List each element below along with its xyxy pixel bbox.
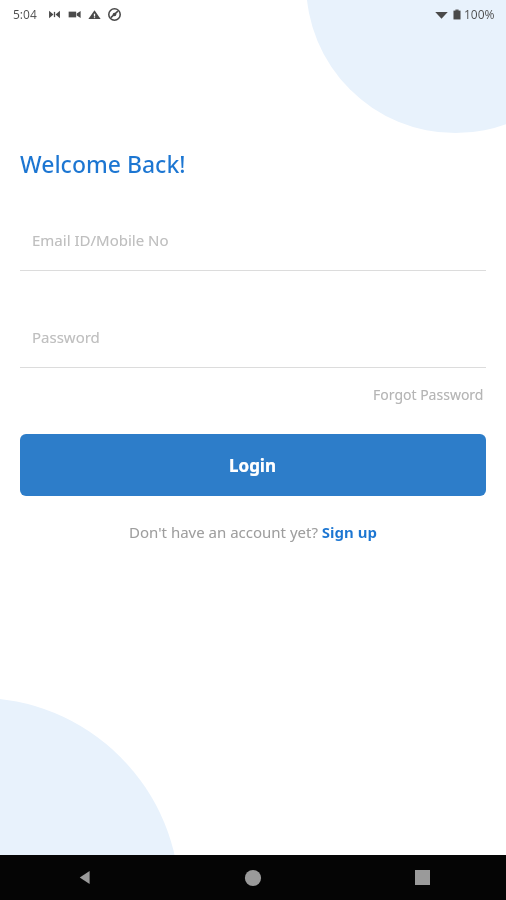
button[interactable]: Back xyxy=(60,855,108,900)
button[interactable]: Password xyxy=(20,320,486,368)
staticText: Don't have an account yet? Sign up xyxy=(129,522,377,542)
staticText: Password xyxy=(32,327,100,347)
button[interactable]: Forgot Password xyxy=(371,382,486,407)
button[interactable]: Email ID/Mobile No xyxy=(20,223,486,271)
button[interactable]: Don't have an account yet? Sign up xyxy=(127,519,379,545)
staticText: 100% xyxy=(464,6,495,22)
button[interactable]: Login xyxy=(20,434,486,496)
staticText: Login xyxy=(229,454,277,477)
staticText: 5:04 xyxy=(13,6,37,22)
staticText: Email ID/Mobile No xyxy=(32,230,169,250)
button[interactable]: Recent apps xyxy=(398,855,446,900)
staticText: Forgot Password xyxy=(373,385,484,404)
button[interactable]: Home xyxy=(229,855,277,900)
staticText: Welcome Back! xyxy=(20,148,186,179)
